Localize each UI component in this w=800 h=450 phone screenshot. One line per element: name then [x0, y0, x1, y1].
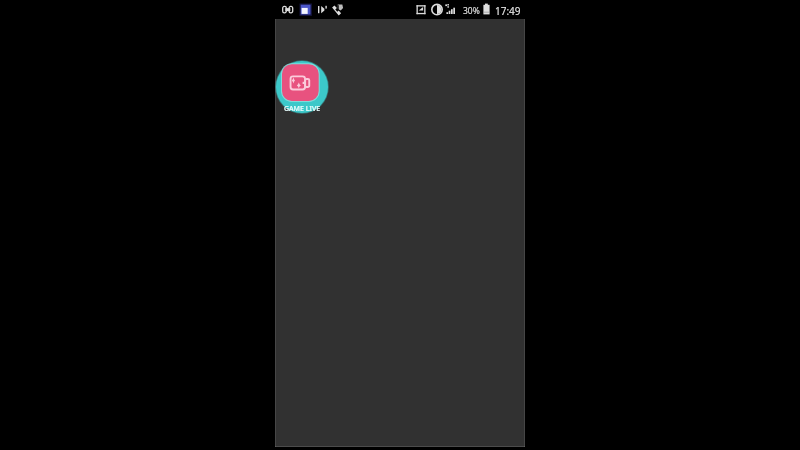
button[interactable]: GAME LIVE screen recorder — [276, 61, 328, 113]
staticText: 17:49 — [495, 4, 521, 18]
staticText: 30% — [463, 5, 480, 17]
staticText: GAME LIVE — [276, 104, 328, 114]
